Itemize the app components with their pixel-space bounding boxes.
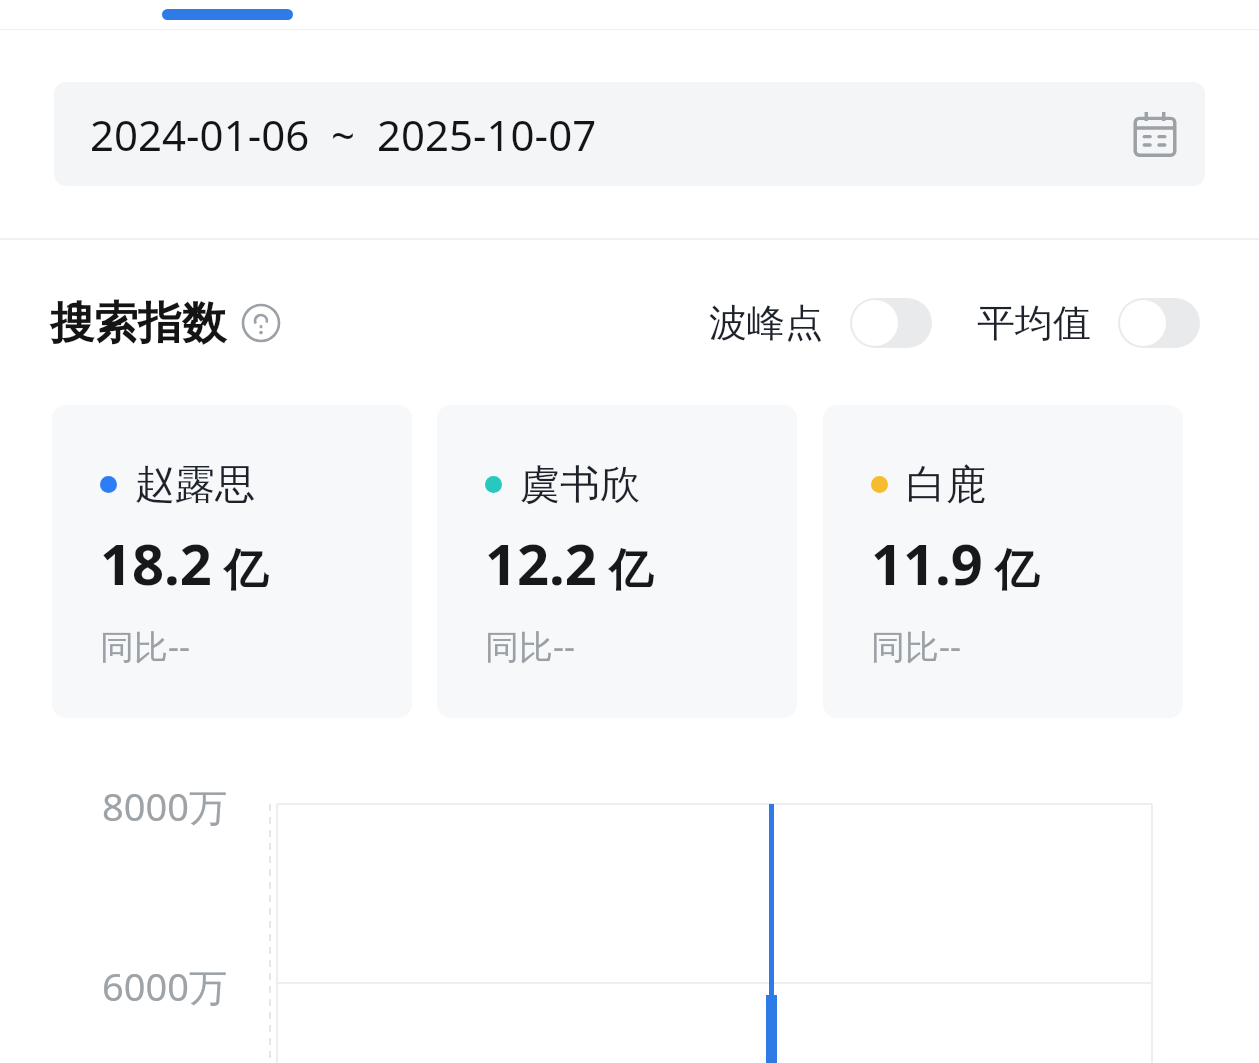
staticText: 18.2	[100, 525, 212, 601]
staticText: 亿	[995, 543, 1039, 598]
staticText: 搜索指数	[50, 296, 226, 351]
button[interactable]: 虞书欣	[437, 405, 797, 718]
staticText: 同比--	[871, 623, 961, 669]
button[interactable]: Toggle average value	[1118, 298, 1200, 348]
staticText: 8000万	[102, 780, 227, 832]
button[interactable]: Toggle peak points	[850, 298, 932, 348]
staticText: 白鹿	[906, 459, 986, 509]
staticText: 虞书欣	[520, 459, 640, 509]
button[interactable]: Help about search index	[240, 302, 282, 344]
staticText: 12.2	[485, 525, 597, 601]
staticText: 11.9	[871, 525, 983, 601]
staticText: 波峰点	[709, 299, 823, 347]
staticText: 赵露思	[135, 459, 255, 509]
button[interactable]: 2024-01-06 ~ 2025-10-07	[54, 82, 1205, 186]
button[interactable]: Pick date range	[1129, 108, 1181, 160]
staticText: 6000万	[102, 960, 227, 1012]
button[interactable]: 赵露思	[52, 405, 412, 718]
staticText: 同比--	[100, 623, 190, 669]
staticText: 平均值	[977, 299, 1091, 347]
staticText: 2024-01-06 ~ 2025-10-07	[90, 106, 597, 163]
staticText: 同比--	[485, 623, 575, 669]
button[interactable]: 白鹿	[823, 405, 1183, 718]
button[interactable]	[162, 9, 293, 20]
staticText: 亿	[609, 543, 653, 598]
staticText: 亿	[224, 543, 268, 598]
